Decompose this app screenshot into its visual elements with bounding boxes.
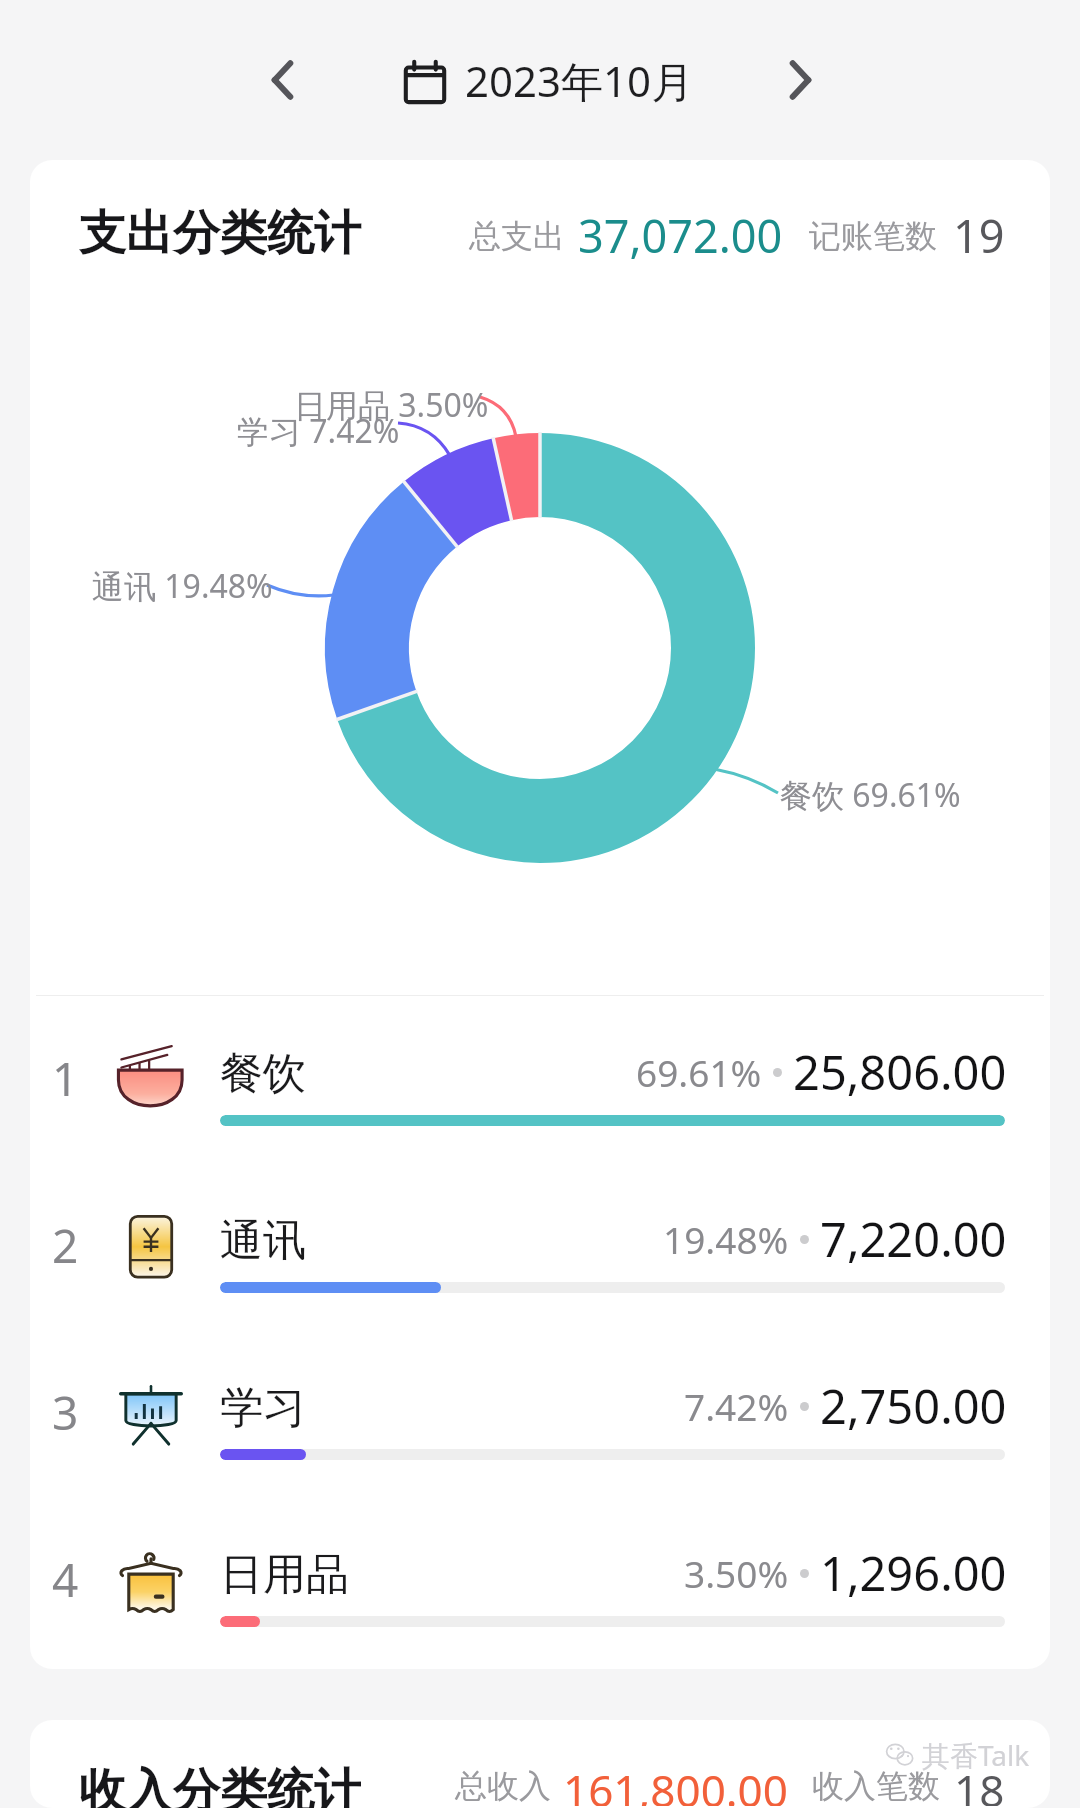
staticText: 总收入 — [455, 1766, 551, 1806]
staticText: 37,072.00 — [578, 205, 783, 266]
staticText: 69.61% — [636, 1047, 762, 1097]
staticText: 18 — [954, 1760, 1005, 1806]
staticText: 收入笔数 — [812, 1766, 940, 1806]
staticText: 记账笔数 — [809, 216, 937, 256]
staticText: 通讯 — [220, 1214, 306, 1268]
staticText: 餐饮 — [220, 1047, 306, 1101]
button[interactable]: 2 — [30, 1163, 1050, 1330]
staticText: 19.48% — [663, 1214, 789, 1264]
staticText: 学习 7.42% — [237, 409, 400, 453]
staticText: 3.50% — [684, 1548, 789, 1598]
staticText: 学习 — [220, 1381, 306, 1435]
button[interactable]: 2023年10月 — [401, 52, 694, 109]
staticText: 支出分类统计 — [79, 204, 361, 263]
staticText: 1 — [52, 1047, 79, 1110]
staticText: 161,800.00 — [563, 1760, 788, 1806]
staticText: 餐饮 69.61% — [780, 773, 961, 817]
staticText: 4 — [52, 1548, 79, 1611]
button[interactable]: 4 — [30, 1497, 1050, 1664]
staticText: 日用品 3.50% — [294, 383, 489, 427]
staticText: 2023年10月 — [465, 52, 694, 109]
staticText: 1,296.00 — [820, 1541, 1007, 1605]
button[interactable]: 收入分类统计 — [30, 1720, 1050, 1808]
staticText: 通讯 19.48% — [92, 564, 273, 608]
button[interactable]: 3 — [30, 1330, 1050, 1497]
staticText: 总支出 — [469, 216, 565, 256]
button[interactable]: Previous month — [244, 40, 324, 120]
staticText: 日用品 — [220, 1548, 349, 1602]
button[interactable]: Next month — [759, 40, 839, 120]
staticText: 2 — [52, 1214, 79, 1277]
staticText: 收入分类统计 — [79, 1762, 361, 1808]
staticText: 其香Talk — [922, 1736, 1030, 1774]
button[interactable]: 支出分类统计 — [30, 160, 1050, 290]
button[interactable]: 1 — [30, 996, 1050, 1163]
staticText: 2,750.00 — [820, 1374, 1007, 1438]
staticText: 19 — [953, 205, 1005, 266]
staticText: 25,806.00 — [793, 1040, 1007, 1104]
staticText: 7.42% — [684, 1381, 789, 1431]
staticText: 3 — [52, 1381, 79, 1444]
staticText: 7,220.00 — [820, 1207, 1007, 1271]
